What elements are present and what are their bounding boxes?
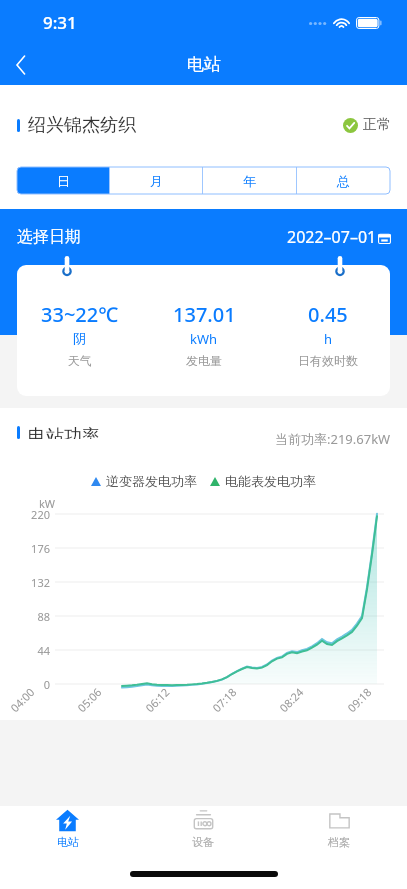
staticText: 绍兴锦杰纺织 — [28, 114, 136, 137]
staticText: 年 — [243, 173, 256, 189]
staticText: 137.01 — [173, 301, 236, 328]
staticText: kW — [39, 496, 56, 511]
staticText: 0.45 — [308, 301, 348, 328]
staticText: 正常 — [363, 116, 391, 134]
staticText: 05:06 — [74, 684, 105, 715]
staticText: 04:00 — [7, 684, 38, 715]
staticText: 电站 — [57, 835, 79, 849]
button[interactable]: 电站 — [0, 806, 135, 856]
button[interactable]: 年 — [203, 167, 296, 194]
staticText: 阴 — [73, 330, 86, 346]
button[interactable]: 设备 — [135, 806, 271, 856]
staticText: 88 — [8, 609, 50, 624]
staticText: h — [324, 330, 333, 348]
staticText: 09:18 — [344, 684, 375, 715]
staticText: 发电量 — [186, 353, 222, 368]
staticText: kWh — [190, 330, 218, 348]
staticText: 33~22℃ — [41, 301, 119, 328]
staticText: 日有效时数 — [298, 353, 358, 368]
staticText: 132 — [8, 575, 50, 590]
button[interactable]: 2022–07–01 — [287, 226, 391, 248]
staticText: 逆变器发电功率 — [106, 473, 197, 489]
staticText: 2022–07–01 — [287, 226, 377, 248]
button[interactable]: 总 — [297, 167, 390, 194]
staticText: 日 — [57, 173, 70, 189]
staticText: 电站功率 — [28, 425, 100, 439]
staticText: 07:18 — [209, 684, 240, 715]
staticText: 电能表发电功率 — [225, 473, 316, 489]
staticText: 月 — [150, 173, 163, 189]
staticText: 电站 — [187, 54, 221, 75]
staticText: 选择日期 — [17, 227, 81, 247]
staticText: 44 — [8, 643, 50, 658]
staticText: 当前功率:219.67kW — [275, 430, 391, 448]
button[interactable]: 月 — [110, 167, 202, 194]
button[interactable]: 日 — [17, 167, 109, 194]
staticText: 总 — [337, 173, 350, 189]
staticText: 0 — [8, 677, 50, 692]
staticText: 220 — [8, 507, 50, 522]
staticText: 天气 — [68, 353, 92, 368]
button[interactable]: 档案 — [271, 806, 407, 856]
staticText: 176 — [8, 541, 50, 556]
staticText: 档案 — [328, 835, 350, 849]
staticText: 06:12 — [142, 684, 173, 715]
button[interactable]: Back — [0, 44, 44, 85]
staticText: 9:31 — [43, 11, 77, 34]
staticText: 08:24 — [276, 684, 307, 715]
staticText: 设备 — [192, 835, 214, 849]
